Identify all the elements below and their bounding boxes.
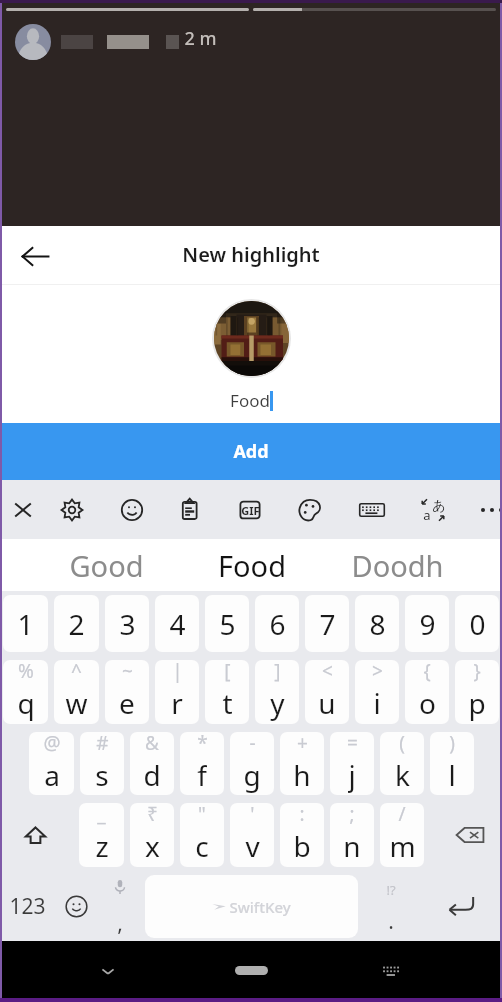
staticText: 4: [169, 605, 186, 643]
button[interactable]: Back: [10, 232, 58, 280]
staticText: &: [145, 732, 159, 756]
button[interactable]: Hide keyboard: [84, 941, 132, 1002]
button[interactable]: 7: [305, 595, 349, 652]
button[interactable]: Period: [367, 871, 415, 941]
staticText: .: [388, 907, 394, 936]
staticText: 2: [68, 605, 85, 643]
button[interactable]: Shift: [0, 799, 76, 871]
button[interactable]: Emoji: [51, 871, 101, 941]
button[interactable]: Backspace: [427, 799, 502, 871]
staticText: 7: [319, 605, 336, 643]
button[interactable]: 8: [355, 595, 399, 652]
button[interactable]: 123: [2, 871, 52, 941]
button[interactable]: Stickers: [285, 480, 335, 539]
staticText: Doodh: [351, 546, 444, 585]
staticText: 0: [469, 605, 486, 643]
button[interactable]: 1: [3, 595, 48, 652]
button[interactable]: 0: [455, 595, 499, 652]
staticText: o: [419, 684, 436, 722]
button[interactable]: ~: [105, 660, 149, 724]
button[interactable]: Switch keyboard: [367, 941, 415, 1002]
button[interactable]: _: [79, 803, 124, 867]
button[interactable]: More: [467, 480, 502, 539]
staticText: 6: [269, 605, 286, 643]
button[interactable]: 5: [205, 595, 249, 652]
button[interactable]: #: [80, 732, 124, 795]
staticText: |: [172, 660, 183, 684]
staticText: %: [18, 660, 34, 684]
staticText: ₹: [147, 803, 158, 827]
button[interactable]: /: [380, 803, 424, 867]
staticText: b: [293, 827, 311, 865]
staticText: /: [398, 803, 406, 827]
button[interactable]: *: [180, 732, 224, 795]
staticText: _: [97, 803, 106, 827]
button[interactable]: ]: [255, 660, 299, 724]
button[interactable]: :: [280, 803, 324, 867]
staticText: t: [222, 684, 233, 722]
button[interactable]: >: [355, 660, 399, 724]
button[interactable]: Good: [41, 539, 171, 591]
staticText: k: [395, 756, 410, 793]
staticText: ;: [349, 803, 355, 827]
button[interactable]: Doodh: [332, 539, 462, 591]
button[interactable]: ): [430, 732, 474, 795]
button[interactable]: ;: [330, 803, 374, 867]
button[interactable]: Home: [227, 941, 275, 1002]
button[interactable]: <: [305, 660, 349, 724]
staticText: s: [95, 756, 109, 793]
button[interactable]: ': [230, 803, 274, 867]
button[interactable]: +: [280, 732, 324, 795]
button[interactable]: [: [205, 660, 249, 724]
button[interactable]: Food: [187, 539, 317, 591]
button[interactable]: ^: [54, 660, 99, 724]
button[interactable]: |: [155, 660, 199, 724]
button[interactable]: {: [405, 660, 449, 724]
staticText: (: [399, 732, 405, 756]
button[interactable]: }: [455, 660, 499, 724]
button[interactable]: 2: [54, 595, 99, 652]
button[interactable]: Close: [0, 480, 48, 539]
button[interactable]: Keyboard layout: [347, 480, 397, 539]
button[interactable]: =: [330, 732, 374, 795]
button[interactable]: GIF: [225, 480, 275, 539]
button[interactable]: 9: [405, 595, 449, 652]
button[interactable]: Highlight cover: [214, 301, 289, 376]
staticText: q: [17, 684, 35, 722]
button[interactable]: Add: [0, 423, 502, 480]
staticText: Food: [218, 546, 286, 585]
button[interactable]: Emoji: [107, 480, 157, 539]
staticText: x: [145, 827, 160, 865]
staticText: =: [347, 732, 358, 756]
staticText: SwiftKey: [229, 897, 291, 917]
button[interactable]: (: [380, 732, 424, 795]
staticText: e: [119, 684, 135, 722]
button[interactable]: Translate: [408, 480, 458, 539]
button[interactable]: Clipboard: [165, 480, 215, 539]
staticText: <: [322, 660, 333, 684]
button[interactable]: Voice input and comma: [96, 871, 144, 941]
staticText: m: [389, 827, 416, 865]
staticText: c: [195, 827, 209, 865]
staticText: !?: [386, 881, 396, 899]
staticText: Add: [233, 439, 269, 464]
staticText: f: [197, 756, 207, 793]
button[interactable]: 6: [255, 595, 299, 652]
button[interactable]: %: [3, 660, 48, 724]
button[interactable]: -: [230, 732, 274, 795]
staticText: GIF: [241, 503, 260, 518]
button[interactable]: Settings: [47, 480, 97, 539]
button[interactable]: 4: [155, 595, 199, 652]
staticText: #: [96, 732, 109, 756]
button[interactable]: ": [180, 803, 224, 867]
button[interactable]: Space: [145, 875, 358, 938]
button[interactable]: &: [130, 732, 174, 795]
staticText: 1: [17, 605, 34, 643]
staticText: -: [249, 732, 256, 756]
button[interactable]: ₹: [130, 803, 174, 867]
button[interactable]: 3: [105, 595, 149, 652]
staticText: a: [423, 506, 431, 524]
staticText: +: [297, 732, 308, 756]
button[interactable]: @: [29, 732, 74, 795]
button[interactable]: Enter: [437, 871, 485, 941]
